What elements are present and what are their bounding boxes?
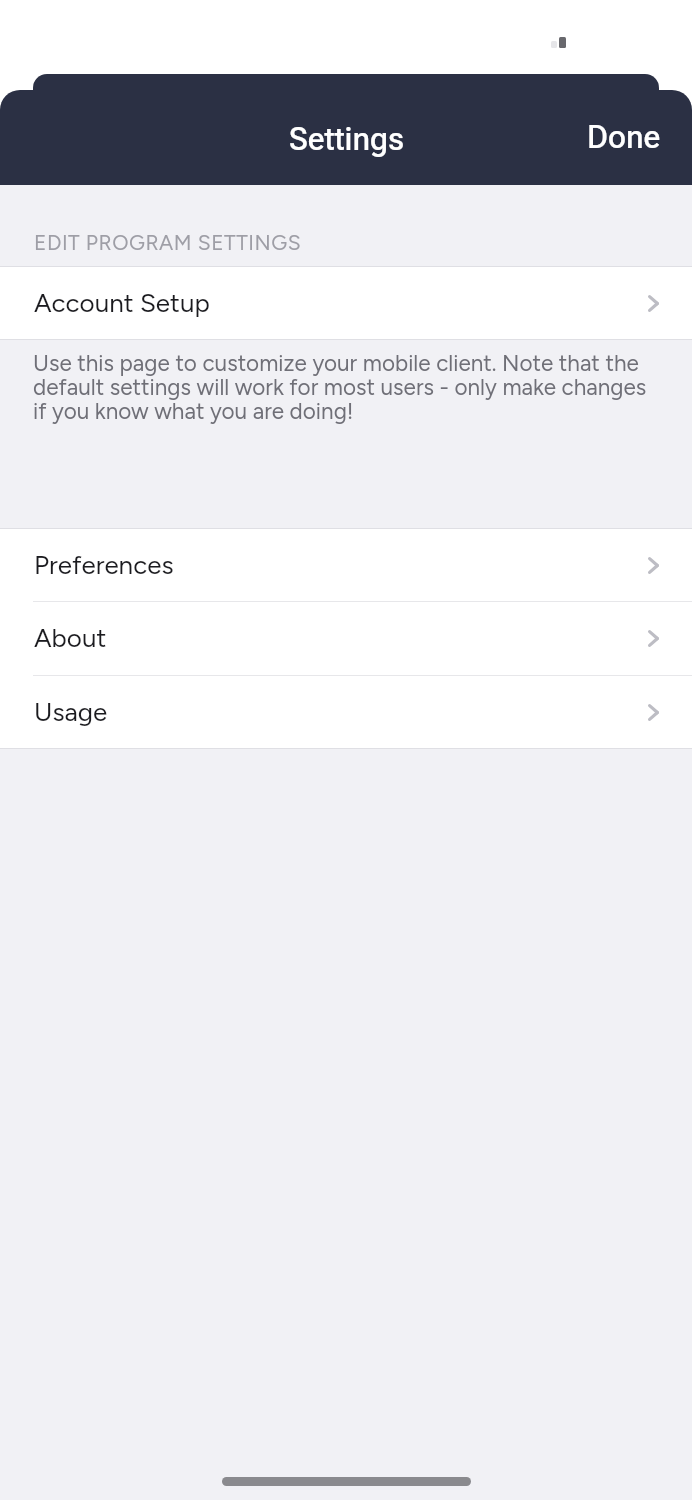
staticText: Use this page to customize your mobile c… [33, 352, 656, 424]
staticText: Account Setup [34, 287, 210, 318]
staticText: Usage [34, 696, 108, 727]
staticText: Settings [289, 121, 404, 157]
staticText: EDIT PROGRAM SETTINGS [34, 230, 302, 255]
staticText: About [34, 622, 107, 653]
staticText: Preferences [34, 549, 174, 580]
button[interactable]: Account Setup [0, 267, 692, 339]
button[interactable]: Usage [0, 676, 692, 748]
button[interactable]: Preferences [0, 529, 692, 601]
staticText: Done [587, 119, 661, 155]
button[interactable]: Done [553, 103, 692, 173]
button[interactable]: About [0, 602, 692, 675]
